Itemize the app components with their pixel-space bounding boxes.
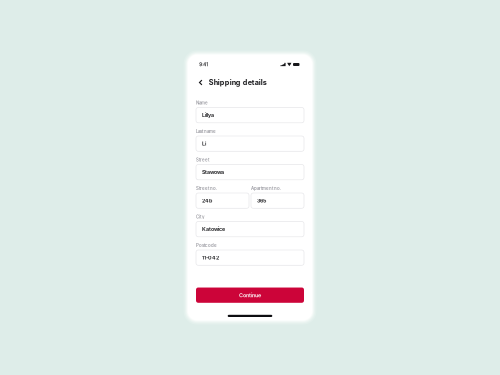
- button[interactable]: Back: [199, 77, 209, 87]
- staticText: Stawowa: [202, 169, 224, 175]
- staticText: Continue: [239, 292, 261, 298]
- staticText: 24b: [202, 197, 212, 204]
- button[interactable]: 11-042: [196, 250, 304, 265]
- staticText: Street: [196, 157, 209, 162]
- staticText: City: [196, 214, 205, 219]
- button[interactable]: Lillya: [196, 107, 304, 123]
- staticText: 9:41: [199, 62, 208, 67]
- staticText: 11-042: [202, 254, 219, 261]
- staticText: Name: [196, 100, 208, 105]
- staticText: Last name: [196, 129, 216, 134]
- button[interactable]: Li: [196, 136, 304, 151]
- staticText: Postcode: [196, 243, 217, 248]
- staticText: Shipping details: [209, 78, 267, 87]
- staticText: 365: [257, 197, 266, 204]
- button[interactable]: 365: [251, 193, 304, 208]
- staticText: Street no.: [196, 186, 217, 191]
- staticText: Katowice: [202, 226, 225, 232]
- staticText: Li: [202, 140, 206, 147]
- button[interactable]: Katowice: [196, 221, 304, 237]
- button[interactable]: 24b: [196, 193, 249, 208]
- staticText: Lillya: [202, 112, 214, 118]
- staticText: Apartment no.: [251, 186, 281, 191]
- button[interactable]: Continue: [196, 287, 304, 303]
- button[interactable]: Stawowa: [196, 164, 304, 180]
